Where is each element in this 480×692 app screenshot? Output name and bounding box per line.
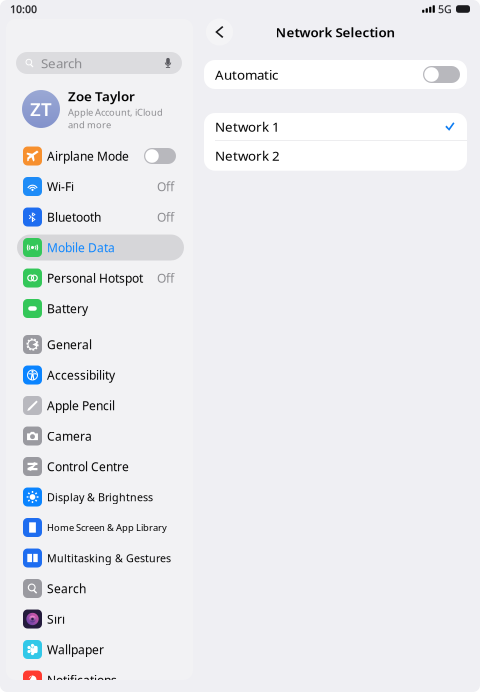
button[interactable]: Back	[206, 18, 233, 45]
staticText: Apple Pencil	[47, 397, 115, 413]
staticText: Camera	[47, 428, 92, 444]
staticText: Zoe Taylor	[68, 87, 135, 105]
button[interactable]: General	[17, 331, 184, 357]
staticText: Home Screen & App Library	[47, 521, 167, 534]
staticText: Search	[41, 54, 82, 72]
button[interactable]: Personal Hotspot	[17, 265, 184, 291]
staticText: Personal Hotspot	[47, 270, 143, 286]
button[interactable]: Wi-Fi	[17, 173, 184, 199]
button[interactable]: Accessibility	[17, 362, 184, 388]
button[interactable]: Battery	[17, 295, 184, 321]
button[interactable]: Network 1	[204, 113, 467, 140]
button[interactable]: Mobile Data	[17, 234, 184, 260]
staticText: Wallpaper	[47, 641, 104, 657]
staticText: 5G	[438, 2, 452, 16]
staticText: 10:00	[10, 2, 37, 16]
staticText: Off	[157, 270, 174, 286]
button[interactable]: Siri	[17, 606, 184, 632]
button[interactable]: Home Screen & App Library	[17, 514, 184, 540]
staticText: Siri	[47, 611, 65, 627]
button[interactable]: ZT	[16, 87, 183, 131]
staticText: Off	[157, 209, 174, 225]
staticText: Automatic	[215, 66, 278, 83]
staticText: Network 1	[215, 118, 280, 135]
staticText: Apple Account, iCloud	[68, 106, 163, 118]
button[interactable]: Bluetooth	[17, 204, 184, 230]
button[interactable]: Airplane Mode	[17, 143, 184, 169]
staticText: Airplane Mode	[47, 148, 129, 164]
staticText: Bluetooth	[47, 209, 101, 225]
staticText: Network Selection	[275, 23, 395, 41]
staticText: Network 2	[215, 147, 280, 164]
staticText: Battery	[47, 300, 88, 316]
staticText: Off	[157, 178, 174, 194]
button[interactable]: Apple Pencil	[17, 392, 184, 418]
button[interactable]: Display & Brightness	[17, 484, 184, 510]
staticText: Multitasking & Gestures	[47, 551, 171, 565]
button[interactable]: Network 2	[204, 141, 467, 171]
staticText: and more	[68, 118, 111, 131]
button[interactable]: Automatic	[423, 66, 467, 83]
button[interactable]: Wallpaper	[17, 636, 184, 662]
button[interactable]: Search	[17, 575, 184, 601]
staticText: Wi-Fi	[47, 178, 74, 194]
staticText: Mobile Data	[47, 239, 115, 255]
staticText: Notifications	[47, 672, 117, 688]
button[interactable]: Control Centre	[17, 453, 184, 479]
button[interactable]: Search	[16, 52, 182, 74]
staticText: Display & Brightness	[47, 490, 153, 504]
staticText: General	[47, 336, 92, 352]
button[interactable]: Notifications	[17, 667, 184, 692]
staticText: Search	[47, 580, 86, 596]
button[interactable]: Multitasking & Gestures	[17, 545, 184, 571]
staticText: Control Centre	[47, 458, 129, 474]
staticText: Accessibility	[47, 367, 115, 383]
button[interactable]: Camera	[17, 423, 184, 449]
staticText: ZT	[30, 97, 52, 121]
